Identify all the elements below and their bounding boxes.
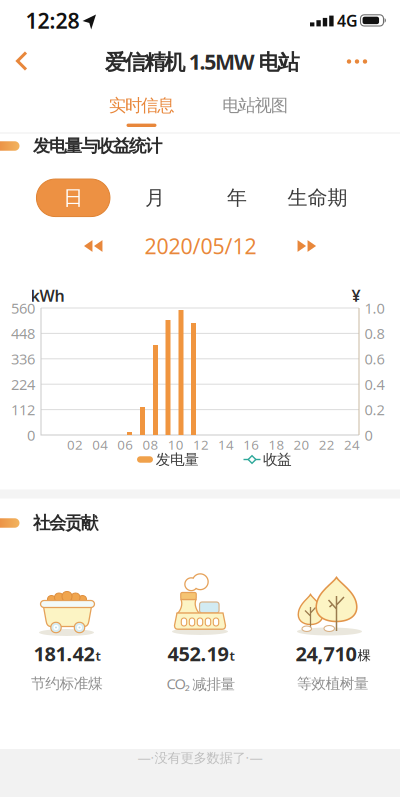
staticText: 2020/05/12 xyxy=(144,232,256,260)
staticText: ¥ xyxy=(351,285,360,306)
button[interactable] xyxy=(84,240,102,252)
button[interactable]: 电站视图 xyxy=(205,90,305,120)
button[interactable]: 2020/05/12 xyxy=(135,234,265,258)
staticText: 0 xyxy=(364,425,372,445)
staticText: —·没有更多数据了·— xyxy=(137,749,262,766)
staticText: 560 xyxy=(11,298,35,318)
staticText: 12 xyxy=(193,436,209,453)
staticText: 生命期 xyxy=(287,185,347,210)
staticText: 02 xyxy=(67,436,83,453)
staticText: 社会贡献 xyxy=(33,512,98,534)
staticText: 18 xyxy=(268,436,284,453)
staticText: 448 xyxy=(11,324,35,343)
staticText: 节约标准煤 xyxy=(31,674,103,692)
button[interactable]: 月 xyxy=(125,179,185,217)
staticText: 0.4 xyxy=(364,374,384,394)
button[interactable] xyxy=(298,240,316,252)
staticText: 22 xyxy=(319,436,335,453)
staticText: 1.0 xyxy=(364,298,384,318)
staticText: 发电量与收益统计 xyxy=(33,135,162,157)
staticText: 181.42 xyxy=(33,640,94,667)
staticText: 月 xyxy=(145,185,165,210)
staticText: 12:28 xyxy=(25,6,79,35)
staticText: 等效植树量 xyxy=(297,674,369,692)
staticText: 04 xyxy=(92,436,108,453)
staticText: 4G xyxy=(337,10,358,31)
button[interactable]: 年 xyxy=(207,179,267,217)
button[interactable]: 实时信息 xyxy=(91,90,191,120)
staticText: 0.2 xyxy=(364,400,384,419)
staticText: 14 xyxy=(218,436,234,453)
button[interactable] xyxy=(340,51,374,71)
staticText: CO₂ 减排量 xyxy=(166,674,236,693)
staticText: t xyxy=(95,647,100,664)
staticText: 224 xyxy=(11,374,35,394)
staticText: 10 xyxy=(168,436,184,453)
staticText: 发电量 xyxy=(156,450,199,468)
staticText: 电站视图 xyxy=(222,95,288,116)
staticText: 日 xyxy=(63,185,83,210)
staticText: t xyxy=(229,647,234,664)
staticText: 24,710 xyxy=(295,640,356,667)
staticText: 实时信息 xyxy=(109,95,174,116)
staticText: 16 xyxy=(243,436,259,453)
staticText: 年 xyxy=(227,185,247,210)
staticText: 112 xyxy=(11,400,35,419)
staticText: 08 xyxy=(142,436,158,453)
staticText: 0 xyxy=(27,425,35,445)
staticText: 收益 xyxy=(263,450,292,468)
staticText: 06 xyxy=(117,436,133,453)
staticText: 爱信精机 1.5MW 电站 xyxy=(105,47,299,76)
staticText: 452.19 xyxy=(167,640,228,667)
staticText: 20 xyxy=(294,436,310,453)
button[interactable]: 生命期 xyxy=(282,179,352,217)
staticText: 棵 xyxy=(357,647,370,664)
staticText: 0.8 xyxy=(364,324,384,343)
staticText: 336 xyxy=(11,349,35,369)
button[interactable]: 日 xyxy=(36,179,110,217)
staticText: kWh xyxy=(30,285,64,306)
staticText: 0.6 xyxy=(364,349,384,369)
button[interactable] xyxy=(15,50,37,72)
staticText: 24 xyxy=(344,436,360,453)
